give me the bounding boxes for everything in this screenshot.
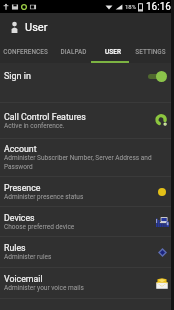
- staticText: SETTINGS: [135, 48, 166, 56]
- staticText: DIALPAD: [60, 48, 87, 56]
- staticText: 16:16: [146, 1, 171, 13]
- staticText: 18%: [125, 3, 137, 10]
- staticText: CONFERENCES: [3, 48, 48, 56]
- button[interactable]: DIALPAD: [54, 41, 96, 63]
- staticText: Choose preferred device: [4, 223, 75, 231]
- staticText: Voicemail: [4, 274, 43, 284]
- button[interactable]: USER: [96, 41, 128, 63]
- button[interactable]: Rules: [0, 237, 174, 267]
- staticText: Call Control Features: [4, 112, 86, 122]
- staticText: Administer rules: [4, 253, 52, 261]
- staticText: Active in conference.: [4, 122, 65, 130]
- button[interactable]: Presence: [0, 177, 174, 206]
- staticText: Devices: [4, 213, 35, 223]
- button[interactable]: Account: [0, 139, 174, 176]
- button[interactable]: CONFERENCES: [0, 41, 54, 63]
- button[interactable]: Sign in: [0, 63, 174, 89]
- button[interactable]: Call Control Features: [0, 103, 174, 138]
- staticText: Administer your voice mails: [4, 284, 84, 292]
- button[interactable]: Devices: [0, 207, 174, 236]
- button[interactable]: Voicemail: [0, 268, 174, 298]
- button[interactable]: User account: [9, 20, 20, 35]
- staticText: USER: [105, 48, 121, 56]
- staticText: Administer presence status: [4, 193, 84, 201]
- staticText: Account: [4, 144, 37, 154]
- staticText: User: [25, 21, 48, 34]
- staticText: Administer Subscriber Number, Server Add…: [4, 154, 164, 171]
- staticText: Rules: [4, 243, 26, 253]
- staticText: Sign in: [4, 71, 31, 82]
- staticText: Presence: [4, 183, 41, 193]
- button[interactable]: SETTINGS: [128, 41, 171, 63]
